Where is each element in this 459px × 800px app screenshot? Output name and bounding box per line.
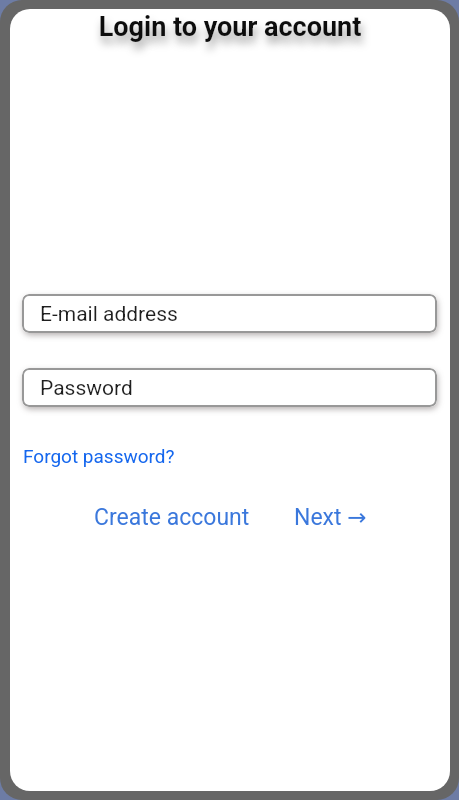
staticText: E-mail address [40, 302, 178, 327]
staticText: Create account [94, 504, 250, 531]
button[interactable]: Forgot password? [23, 445, 175, 467]
button[interactable]: Password [22, 368, 437, 407]
staticText: Password [40, 376, 133, 401]
button[interactable]: Next → [294, 504, 367, 531]
button[interactable]: Create account [94, 504, 250, 531]
staticText: Next → [294, 504, 367, 531]
button[interactable]: E-mail address [22, 294, 437, 333]
staticText: Forgot password? [23, 445, 175, 467]
staticText: Login to your account [10, 11, 450, 43]
